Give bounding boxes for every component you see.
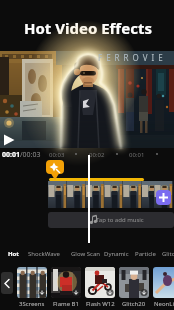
button[interactable]: Flame B1 [51,267,81,308]
button[interactable]: Particle [135,250,157,258]
staticText: Glow Scan [71,250,100,258]
staticText: Tap to add music [96,216,144,224]
staticText: Glitc [162,250,174,258]
staticText: Dynamic [104,250,129,258]
staticText: Particle [135,250,157,258]
staticText: 00:02 [89,151,105,159]
staticText: Glitch20 [122,300,146,308]
staticText: Hot [8,250,19,258]
button[interactable] [46,160,65,180]
button[interactable]: NeonLine [153,267,174,308]
button[interactable]: Glow Scan [71,250,100,258]
button[interactable]: Tap to add music [48,212,174,228]
staticText: 3Screens [19,300,45,308]
button[interactable]: ShockWave [28,250,60,258]
staticText: 00:01/00:03 [2,150,41,160]
button[interactable]: Hot [8,250,19,258]
button[interactable] [2,133,18,149]
button[interactable] [1,272,13,294]
staticText: Flame B1 [53,300,79,308]
staticText: 00:01 [129,151,145,159]
staticText: FERROVIE [98,52,167,63]
staticText: 00:03 [49,151,65,159]
button[interactable] [156,190,171,205]
button[interactable]: 3Screens [17,267,47,308]
staticText: Flash W12 [86,300,115,308]
staticText: Hot Video Effects [24,18,152,38]
button[interactable]: Glitc [162,250,174,258]
button[interactable]: Dynamic [104,250,129,258]
staticText: NeonLine [154,300,174,308]
button[interactable]: Flash W12 [85,267,115,308]
staticText: ShockWave [28,250,60,258]
button[interactable]: Glitch20 [119,267,149,308]
